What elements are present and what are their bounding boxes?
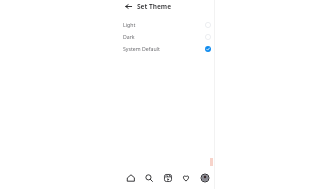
- staticText: Light: [123, 21, 203, 28]
- button[interactable]: Search: [141, 170, 157, 186]
- button[interactable]: Dark: [120, 30, 215, 42]
- button[interactable]: Activity: [178, 170, 194, 186]
- button[interactable]: Light: [120, 18, 215, 30]
- button[interactable]: Reels: [160, 170, 176, 186]
- button[interactable]: System Default: [120, 42, 215, 54]
- button[interactable]: Profile: [197, 170, 213, 186]
- staticText: Set Theme: [137, 2, 172, 11]
- staticText: System Default: [123, 45, 203, 52]
- button[interactable]: Back: [123, 1, 134, 12]
- staticText: Dark: [123, 33, 203, 40]
- button[interactable]: Home: [123, 170, 139, 186]
